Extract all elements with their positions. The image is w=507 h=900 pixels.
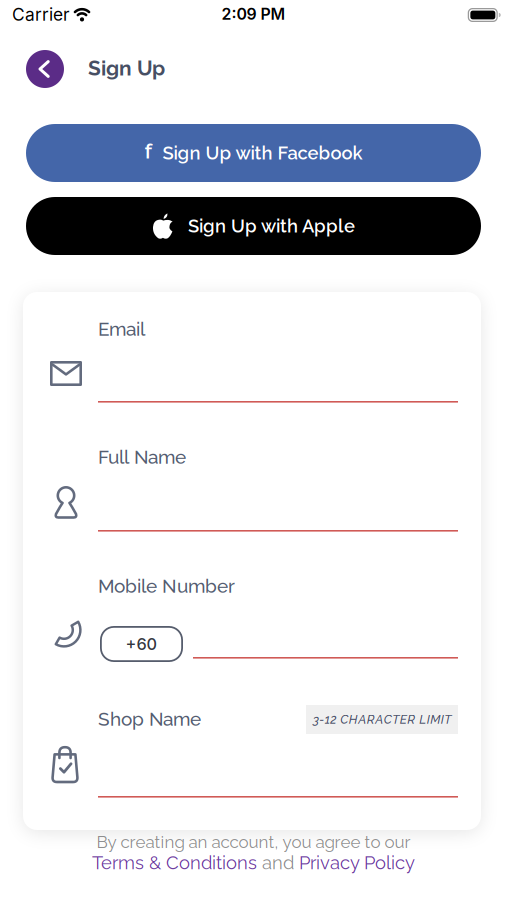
staticText: Privacy Policy xyxy=(299,852,415,873)
staticText: 3-12 CHARACTER LIMIT xyxy=(313,712,451,727)
button[interactable]: Sign Up with Apple xyxy=(26,197,481,255)
staticText: Sign Up with Apple xyxy=(188,215,355,237)
staticText: Sign Up xyxy=(88,56,165,80)
button[interactable]: Back xyxy=(26,50,64,88)
staticText: Sign Up with Facebook xyxy=(162,142,362,164)
button[interactable]: f xyxy=(26,124,481,182)
staticText: Shop Name xyxy=(98,708,201,730)
staticText: By creating an account, you agree to our xyxy=(96,832,410,852)
staticText: Email xyxy=(98,318,145,340)
staticText: 2:09 PM xyxy=(221,4,285,24)
staticText: and xyxy=(257,852,299,873)
button[interactable]: Country code +60 xyxy=(100,626,183,662)
staticText: Carrier xyxy=(12,4,70,25)
staticText: f xyxy=(144,138,152,163)
staticText: Mobile Number xyxy=(98,575,235,597)
button[interactable]: Privacy Policy xyxy=(299,852,415,873)
staticText: Full Name xyxy=(98,446,186,468)
button[interactable]: Terms & Conditions xyxy=(92,852,257,873)
staticText: +60 xyxy=(125,634,157,654)
staticText: Terms & Conditions xyxy=(92,852,257,873)
